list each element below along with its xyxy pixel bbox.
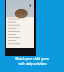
staticText: with daily activities bbox=[18, 62, 47, 66]
staticText: Watch your child grow bbox=[15, 57, 49, 61]
